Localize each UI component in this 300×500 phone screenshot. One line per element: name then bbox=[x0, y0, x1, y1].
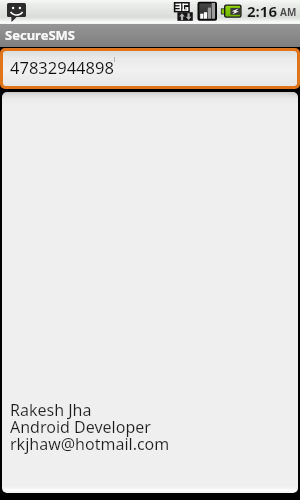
staticText: Android Developer bbox=[10, 416, 151, 438]
button[interactable]: New message notification bbox=[0, 0, 30, 24]
staticText: AM bbox=[280, 5, 297, 19]
staticText: 2:16 bbox=[247, 1, 277, 21]
staticText: SecureSMS bbox=[5, 26, 75, 44]
staticText: Rakesh Jha bbox=[10, 399, 92, 421]
staticText: 47832944898 bbox=[10, 56, 114, 78]
button[interactable]: 47832944898 bbox=[0, 47, 300, 92]
staticText: rkjhaw@hotmail.com bbox=[10, 433, 170, 455]
